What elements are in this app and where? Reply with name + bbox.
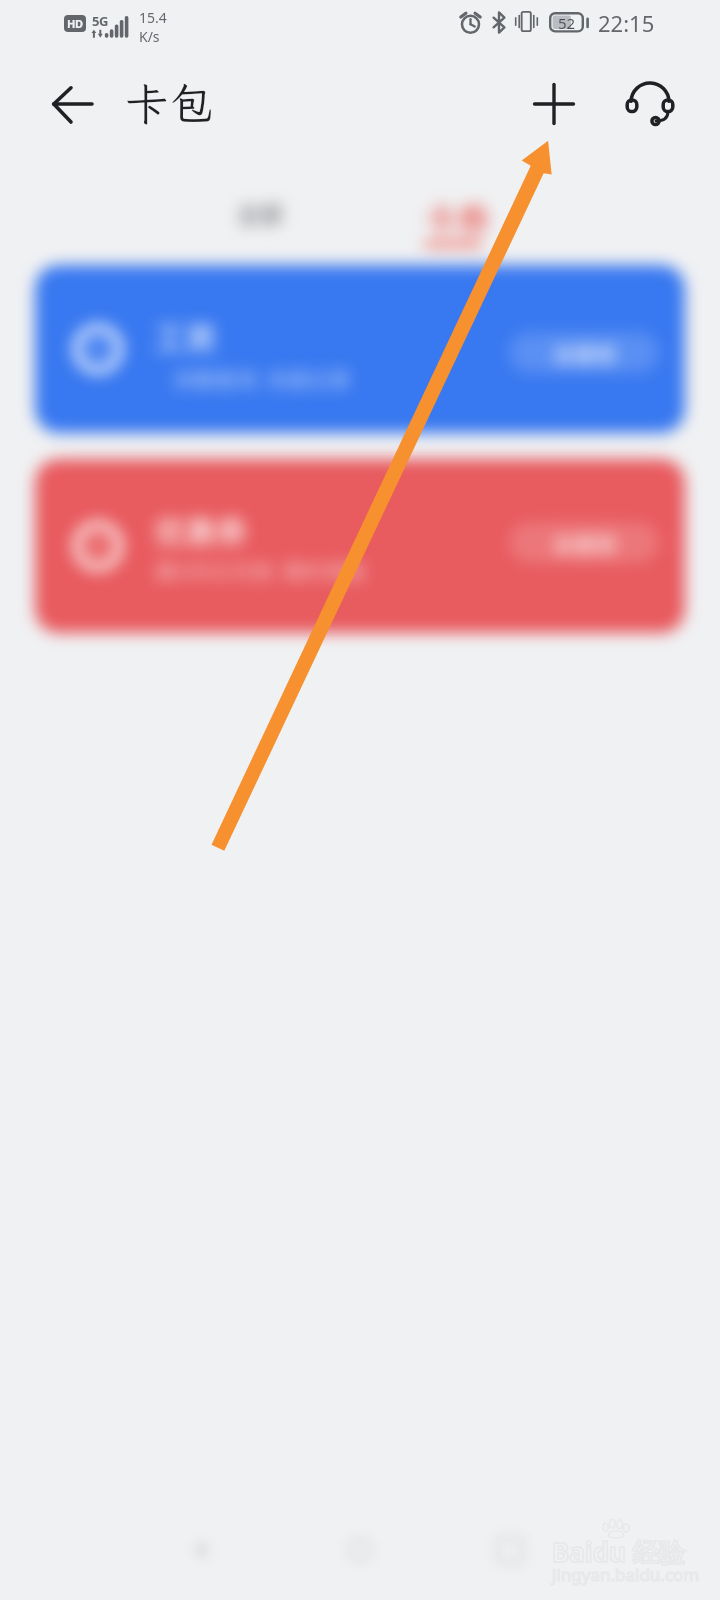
button[interactable]: Customer service xyxy=(618,71,686,139)
staticText: 工资 xyxy=(154,313,216,358)
staticText: HD xyxy=(67,16,83,31)
staticText: 52 xyxy=(558,13,575,33)
staticText: 余额查询 充值记录 xyxy=(173,363,351,393)
button[interactable]: 优惠券 xyxy=(35,459,685,633)
staticText: jingyan.baidu.com xyxy=(552,1563,700,1586)
button[interactable]: Add xyxy=(521,71,589,139)
button[interactable]: 去使用 xyxy=(509,522,659,563)
button[interactable]: 去使用 xyxy=(509,332,659,373)
staticText: 5G xyxy=(92,12,109,30)
staticText: 去使用 xyxy=(553,338,616,368)
staticText: Baidu 经验 xyxy=(552,1534,685,1570)
button[interactable]: Back xyxy=(40,72,108,140)
staticText: 卡券 xyxy=(424,194,490,242)
staticText: 优惠券 xyxy=(154,507,247,552)
staticText: 满100元可用 限时领取 xyxy=(154,555,367,585)
staticText: K/s xyxy=(139,27,160,46)
staticText: 卡包 xyxy=(125,75,213,133)
button[interactable]: 工资 xyxy=(35,265,685,433)
staticText: 去使用 xyxy=(553,528,616,558)
staticText: 22:15 xyxy=(598,8,655,38)
staticText: 全部 xyxy=(237,196,283,229)
staticText: 15.4 xyxy=(139,8,167,27)
